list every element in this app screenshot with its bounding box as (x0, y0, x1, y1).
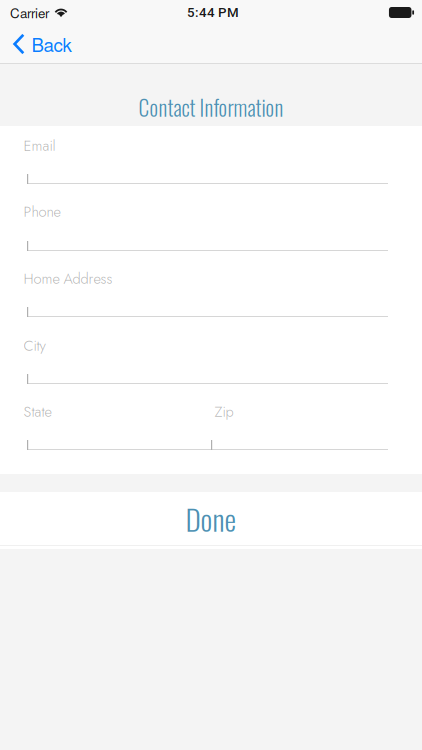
button[interactable]: Done (0, 492, 422, 549)
staticText: Contact Information (138, 91, 283, 123)
staticText: 5:44 PM (187, 5, 239, 20)
staticText: City (23, 335, 45, 356)
staticText: Done (185, 497, 236, 540)
button[interactable]: Back (0, 23, 83, 65)
staticText: State (23, 401, 51, 422)
staticText: Home Address (23, 268, 112, 289)
staticText: Back (31, 31, 71, 57)
staticText: Zip (214, 401, 233, 422)
staticText: Carrier (10, 3, 49, 22)
staticText: Email (23, 135, 55, 156)
staticText: Phone (23, 201, 60, 222)
